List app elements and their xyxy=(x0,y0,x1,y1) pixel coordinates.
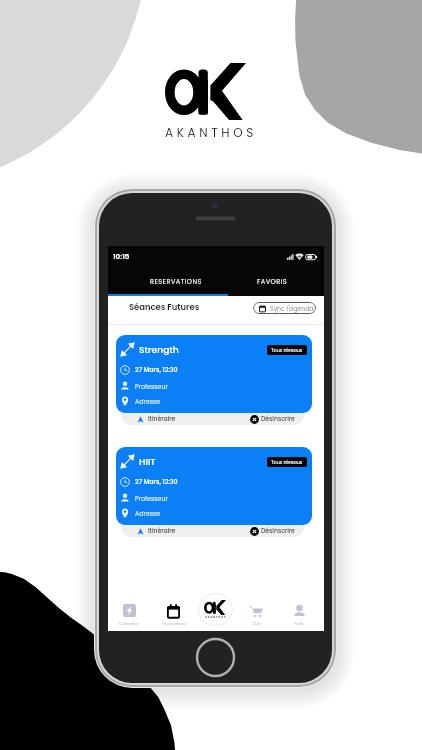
staticText: Itinéraire xyxy=(148,527,176,536)
button[interactable]: Club xyxy=(237,598,275,631)
staticText: Séances Futures xyxy=(129,301,200,313)
staticText: Itinéraire xyxy=(148,415,176,424)
staticText: FAVORIS xyxy=(257,277,288,286)
staticText: Tous niveaux xyxy=(271,347,303,354)
staticText: 10:15 xyxy=(113,251,130,261)
button[interactable]: Strength xyxy=(116,335,312,413)
button[interactable]: HIIT xyxy=(116,447,312,525)
staticText: RESERVATIONS xyxy=(150,277,202,286)
button[interactable]: Désinscrire xyxy=(261,414,295,425)
button[interactable]: Désinscrire xyxy=(261,526,295,537)
staticText: 27 Mars, 12:30 xyxy=(135,477,178,486)
button[interactable]: Akanthos home xyxy=(198,593,233,626)
staticText: Désinscrire xyxy=(261,527,295,536)
staticText: Strength xyxy=(139,343,179,356)
staticText: Réservations xyxy=(162,621,187,626)
staticText: HIIT xyxy=(139,455,156,468)
button[interactable]: Calendrier xyxy=(110,598,148,631)
button[interactable]: Itinéraire xyxy=(148,526,176,537)
button[interactable]: Profil xyxy=(280,598,318,631)
staticText: Adresse xyxy=(135,509,161,518)
staticText: Sync l'agenda xyxy=(270,304,314,313)
button[interactable]: Réservations xyxy=(155,598,193,631)
staticText: Tous niveaux xyxy=(271,459,303,466)
staticText: Professeur xyxy=(135,494,168,503)
staticText: Professeur xyxy=(135,382,168,391)
button[interactable]: FAVORIS xyxy=(232,272,312,290)
button[interactable]: RESERVATIONS xyxy=(120,272,232,290)
staticText: Désinscrire xyxy=(261,415,295,424)
staticText: Profil xyxy=(294,621,304,626)
staticText: Club xyxy=(252,621,261,626)
staticText: 27 Mars, 12:30 xyxy=(135,365,178,374)
staticText: AKANTHOS xyxy=(205,615,227,619)
staticText: Calendrier xyxy=(119,621,139,626)
button[interactable]: Sync l'agenda xyxy=(253,302,316,314)
staticText: Adresse xyxy=(135,397,161,406)
staticText: AKANTHOS xyxy=(165,124,257,141)
button[interactable]: Itinéraire xyxy=(148,414,176,425)
